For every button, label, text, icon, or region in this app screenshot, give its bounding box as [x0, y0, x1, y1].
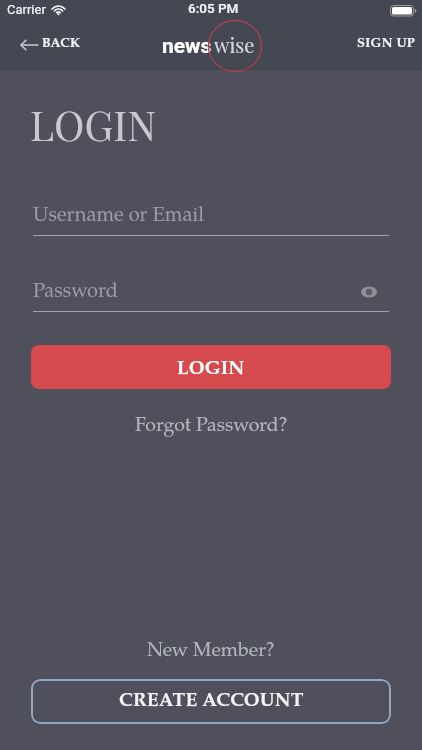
- staticText: Forgot Password?: [135, 417, 288, 437]
- staticText: SIGN UP: [357, 38, 416, 51]
- button[interactable]: CREATE ACCOUNT: [31, 679, 391, 724]
- button[interactable]: Password: [33, 282, 389, 312]
- button[interactable]: SIGN UP: [351, 32, 422, 57]
- staticText: wise: [214, 31, 255, 58]
- staticText: Carrier: [7, 2, 46, 17]
- button[interactable]: [361, 286, 377, 298]
- staticText: CREATE ACCOUNT: [119, 692, 304, 711]
- staticText: LOGIN: [30, 97, 157, 152]
- staticText: LOGIN: [177, 360, 245, 379]
- staticText: news: [162, 34, 212, 59]
- staticText: Username or Email: [33, 206, 204, 226]
- staticText: New Member?: [147, 642, 275, 662]
- button[interactable]: Forgot Password?: [133, 417, 290, 437]
- button[interactable]: LOGIN: [31, 345, 391, 389]
- staticText: Password: [33, 282, 118, 302]
- staticText: 6:05 PM: [188, 0, 239, 16]
- staticText: BACK: [42, 38, 81, 51]
- button[interactable]: BACK: [14, 32, 87, 57]
- button[interactable]: Username or Email: [33, 206, 389, 236]
